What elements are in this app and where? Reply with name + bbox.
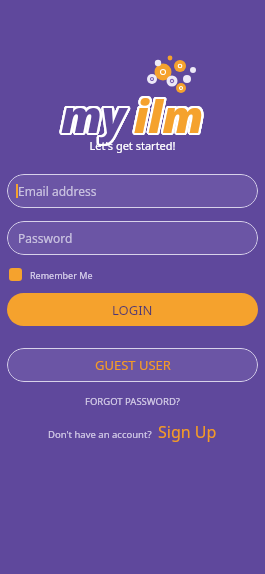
staticText: GUEST USER xyxy=(95,356,171,374)
staticText: Password xyxy=(18,230,73,246)
staticText: Remember Me xyxy=(30,269,93,281)
button[interactable]: Sign Up xyxy=(158,421,217,443)
button[interactable]: Password xyxy=(7,221,258,255)
button[interactable]: GUEST USER xyxy=(7,348,258,382)
staticText: LOGIN xyxy=(112,301,153,319)
staticText: Let's get started! xyxy=(0,138,265,153)
staticText: Don't have an account? xyxy=(48,428,152,441)
button[interactable]: LOGIN xyxy=(7,293,258,326)
staticText: FORGOT PASSWORD? xyxy=(85,395,180,408)
staticText: Sign Up xyxy=(158,421,217,443)
button[interactable]: FORGOT PASSWORD? xyxy=(79,392,186,411)
button[interactable]: Email address xyxy=(7,174,258,208)
button[interactable]: Remember Me xyxy=(9,268,265,281)
staticText: Email address xyxy=(18,183,97,199)
